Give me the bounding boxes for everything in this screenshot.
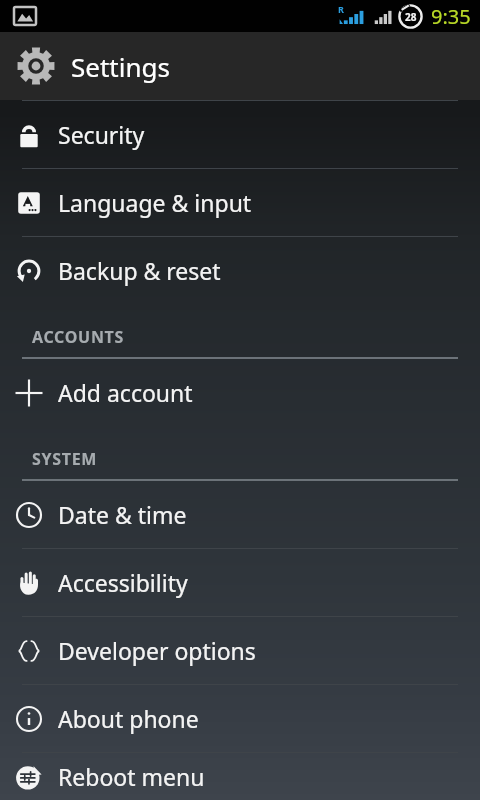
staticText: Add account [58, 377, 193, 408]
button[interactable]: Security [0, 101, 480, 168]
button[interactable]: Reboot menu [0, 753, 480, 800]
staticText: Date & time [58, 499, 187, 530]
staticText: SYSTEM [32, 448, 98, 470]
staticText: Language & input [58, 187, 252, 218]
staticText: Backup & reset [58, 255, 221, 286]
button[interactable]: Developer options [0, 617, 480, 684]
button[interactable]: Settings [0, 32, 480, 100]
staticText: About phone [58, 703, 199, 734]
staticText: Accessibility [58, 567, 188, 598]
button[interactable]: Add account [0, 359, 480, 426]
staticText: Security [58, 119, 145, 150]
button[interactable]: About phone [0, 685, 480, 752]
button[interactable]: Accessibility [0, 549, 480, 616]
staticText: R [338, 3, 344, 15]
staticText: ACCOUNTS [32, 326, 125, 348]
staticText: Developer options [58, 635, 256, 666]
staticText: 28 [405, 10, 417, 24]
staticText: 9:35 [431, 3, 471, 30]
staticText: Settings [71, 49, 170, 84]
button[interactable]: Backup & reset [0, 237, 480, 304]
staticText: Reboot menu [58, 761, 205, 792]
other: Screenshot notification [14, 7, 36, 25]
button[interactable]: Date & time [0, 481, 480, 548]
button[interactable]: Language & input [0, 169, 480, 236]
